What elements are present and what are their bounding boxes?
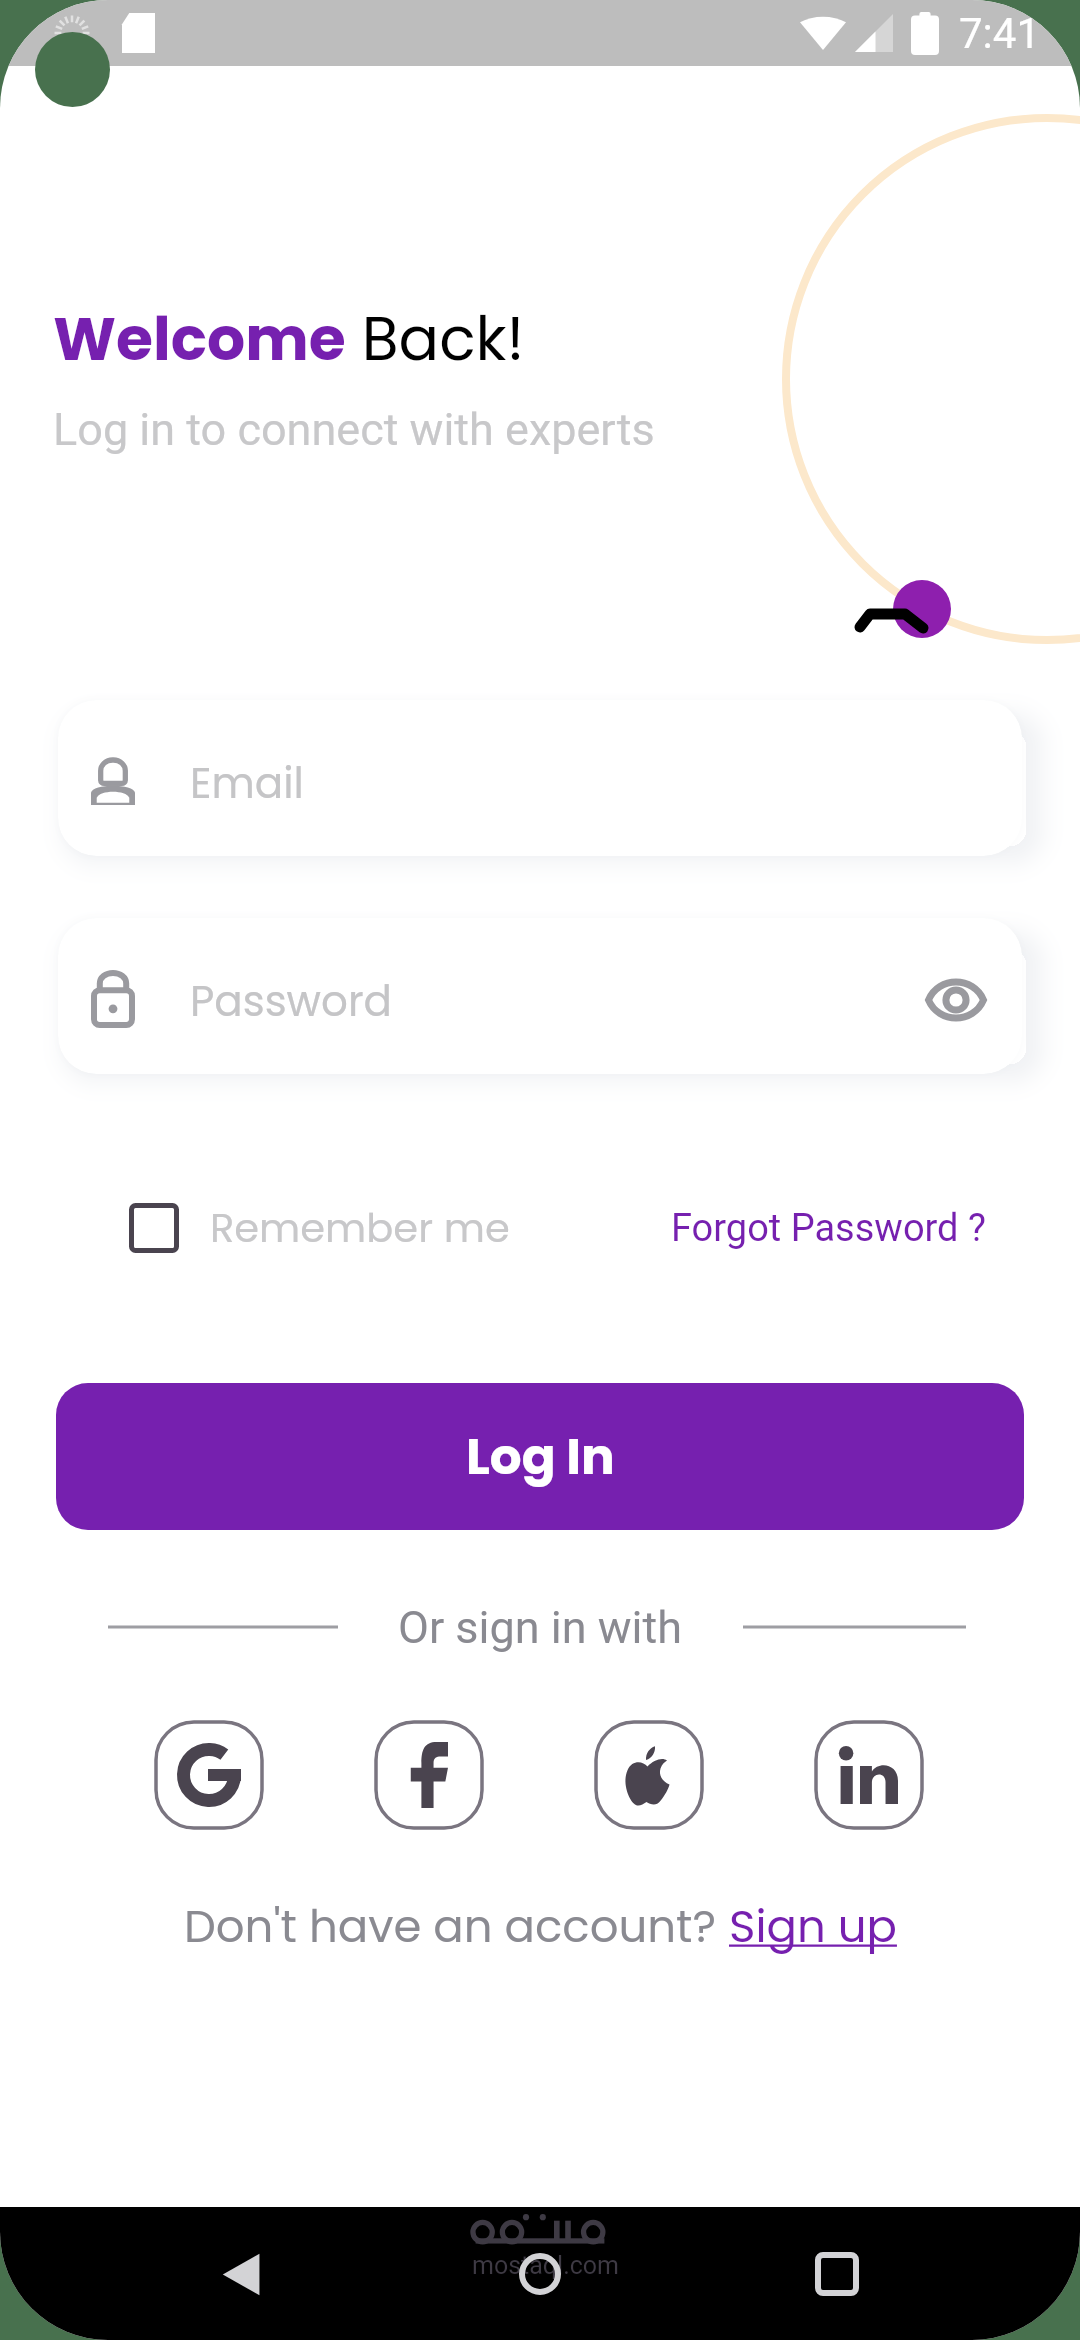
- button[interactable]: Show password: [914, 961, 998, 1031]
- button[interactable]: Sign in with Facebook: [374, 1720, 484, 1830]
- button[interactable]: Recents: [792, 2229, 882, 2319]
- staticText: Welcome Back!: [53, 297, 525, 381]
- staticText: Don't have an account?: [184, 1895, 729, 1958]
- staticText: mostaql.com: [472, 2251, 620, 2280]
- staticText: Remember me: [210, 1200, 510, 1256]
- button[interactable]: Password: [58, 918, 1022, 1074]
- staticText: Password: [190, 972, 392, 1031]
- staticText: Forgot Password ?: [671, 1206, 986, 1251]
- staticText: Or sign in with: [398, 1601, 683, 1654]
- button[interactable]: Home: [495, 2229, 585, 2319]
- button[interactable]: Email: [58, 700, 1022, 856]
- button[interactable]: Sign up: [729, 1895, 897, 1958]
- button[interactable]: Forgot Password ?: [660, 1196, 997, 1260]
- button[interactable]: Sign in with Google: [154, 1720, 264, 1830]
- staticText: Log In: [466, 1422, 615, 1492]
- button[interactable]: Remember me: [126, 1196, 510, 1260]
- button[interactable]: Sign in with Apple: [594, 1720, 704, 1830]
- button[interactable]: Back: [196, 2229, 286, 2319]
- button[interactable]: Log In: [56, 1383, 1024, 1530]
- staticText: Log in to connect with experts: [53, 403, 655, 456]
- button[interactable]: Sign in with LinkedIn: [814, 1720, 924, 1830]
- staticText: 7:41: [959, 9, 1040, 58]
- staticText: Email: [190, 754, 304, 813]
